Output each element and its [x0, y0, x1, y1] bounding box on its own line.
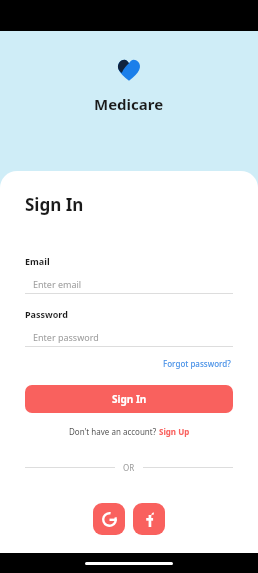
button[interactable]: Sign in with Google [93, 503, 125, 535]
staticText: Don't have an account? [69, 426, 159, 437]
staticText: Medicare [94, 94, 164, 114]
button[interactable]: Sign In [25, 385, 233, 413]
staticText: Sign Up [159, 426, 190, 437]
staticText: OR [123, 462, 135, 473]
staticText: Email [25, 255, 50, 267]
staticText: Sign In [25, 193, 84, 216]
staticText: Enter password [33, 331, 99, 343]
staticText: Sign In [112, 392, 147, 406]
button[interactable]: Enter email [25, 275, 233, 294]
button[interactable]: Sign Up [159, 426, 190, 437]
staticText: Enter email [33, 278, 82, 290]
staticText: Forgot password? [163, 358, 231, 369]
staticText: Password [25, 308, 68, 320]
button[interactable]: Sign in with Facebook [133, 503, 165, 535]
button[interactable]: Forgot password? [161, 357, 233, 370]
button[interactable]: Enter password [25, 328, 233, 347]
